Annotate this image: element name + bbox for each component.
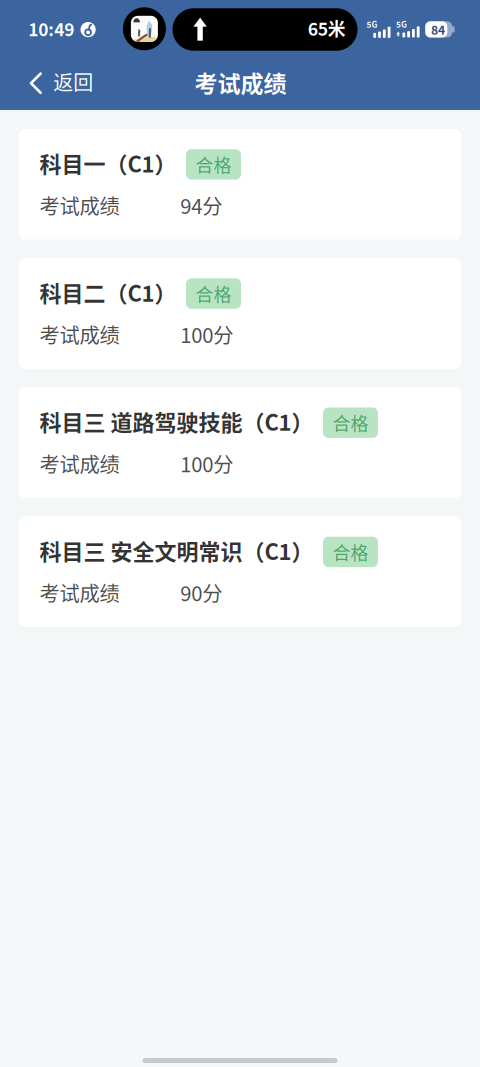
staticText: 考试成绩 [39,319,119,349]
staticText: 10:49 [28,16,74,41]
staticText: 科目一（C1） [39,147,176,179]
staticText: 合格 [332,539,368,565]
staticText: 65米 [308,15,346,41]
staticText: 合格 [195,151,231,177]
staticText: 返回 [53,67,93,96]
staticText: 科目三 安全文明常识（C1） [39,534,313,566]
staticText: 5G [367,18,378,30]
button[interactable]: 返回 [0,58,107,110]
staticText: 100分 [180,449,233,478]
staticText: 84 [431,21,445,38]
staticText: 合格 [332,410,368,436]
staticText: 考试成绩 [194,66,286,99]
staticText: 考试成绩 [39,449,119,478]
staticText: 考试成绩 [39,578,119,607]
staticText: 考试成绩 [39,190,119,220]
staticText: 90分 [180,578,222,607]
staticText: 94分 [180,190,222,220]
staticText: 100分 [180,319,233,349]
staticText: 科目二（C1） [39,276,176,308]
staticText: 5G [396,18,407,30]
staticText: 合格 [195,280,231,307]
staticText: 科目三 道路驾驶技能（C1） [39,405,313,437]
